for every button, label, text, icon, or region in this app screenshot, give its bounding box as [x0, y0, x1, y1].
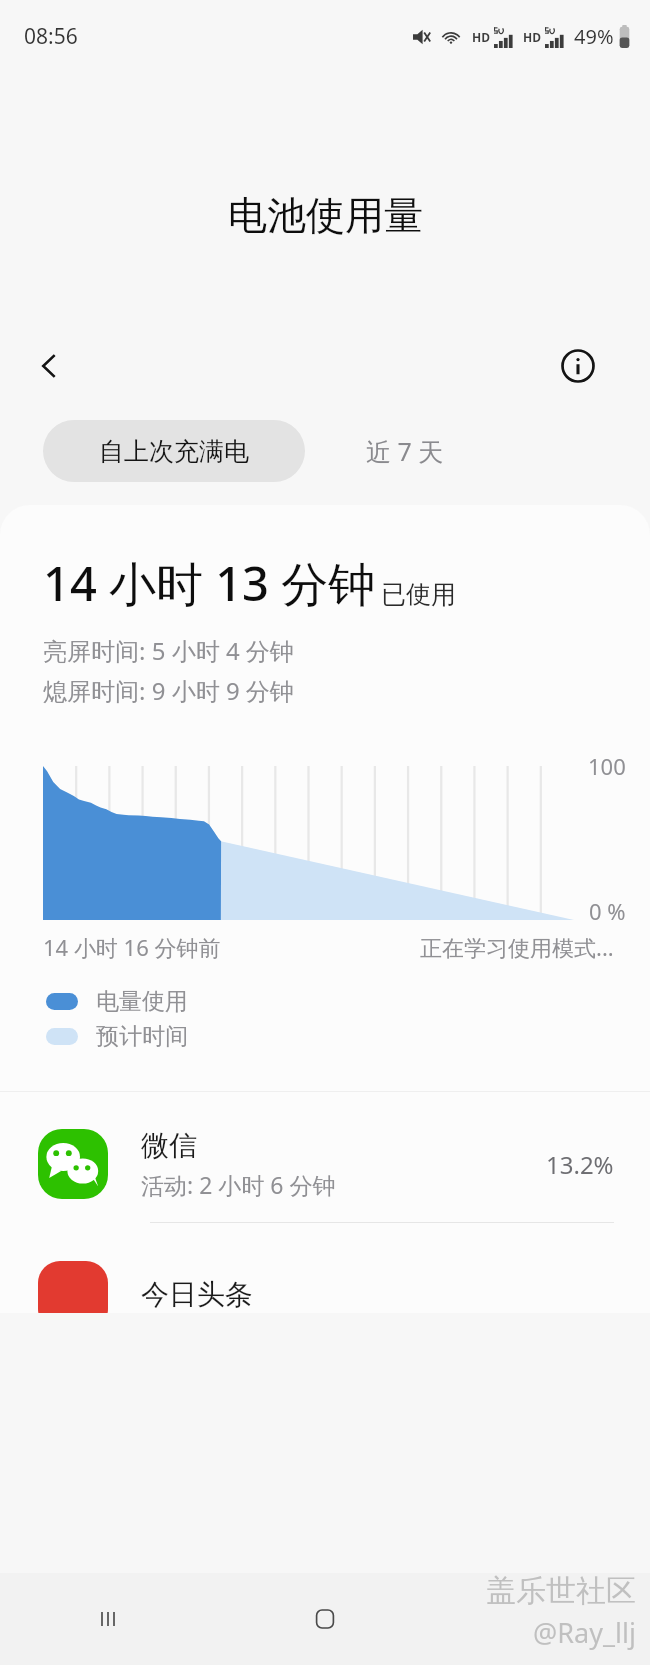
button[interactable]: Back	[433, 1573, 650, 1665]
staticText: 100	[588, 751, 626, 781]
button[interactable]: 今日头条	[0, 1223, 650, 1313]
staticText: 49%	[574, 23, 614, 50]
staticText: 正在学习使用模式...	[420, 932, 614, 962]
staticText: 自上次充满电	[99, 436, 249, 467]
staticText: 预计时间	[96, 1022, 188, 1051]
staticText: 14 小时 13 分钟	[43, 551, 376, 615]
staticText: @Ray_llj	[533, 1614, 636, 1651]
staticText: 0 %	[589, 896, 626, 926]
button[interactable]: Information	[554, 342, 602, 390]
button[interactable]: 微信	[0, 1092, 650, 1223]
staticText: 13.2%	[546, 1148, 614, 1181]
staticText: 微信	[141, 1128, 197, 1163]
button[interactable]: 自上次充满电	[43, 420, 305, 482]
button[interactable]: 近 7 天	[305, 420, 505, 482]
staticText: 盖乐世社区	[486, 1572, 636, 1610]
staticText: 电池使用量	[228, 191, 423, 240]
staticText: 电量使用	[96, 987, 188, 1016]
staticText: 08:56	[24, 22, 78, 51]
staticText: 今日头条	[141, 1277, 253, 1312]
button[interactable]: Recents	[0, 1573, 216, 1665]
staticText: 活动: 2 小时 6 分钟	[141, 1169, 336, 1200]
staticText: HD	[523, 29, 541, 45]
button[interactable]: Home	[216, 1573, 433, 1665]
staticText: 14 小时 16 分钟前	[43, 932, 221, 962]
staticText: 亮屏时间: 5 小时 4 分钟	[43, 634, 294, 667]
staticText: 熄屏时间: 9 小时 9 分钟	[43, 674, 294, 707]
staticText: 近 7 天	[366, 434, 444, 468]
staticText: HD	[472, 29, 490, 45]
button[interactable]: Back	[24, 340, 76, 392]
staticText: 已使用	[381, 579, 456, 610]
